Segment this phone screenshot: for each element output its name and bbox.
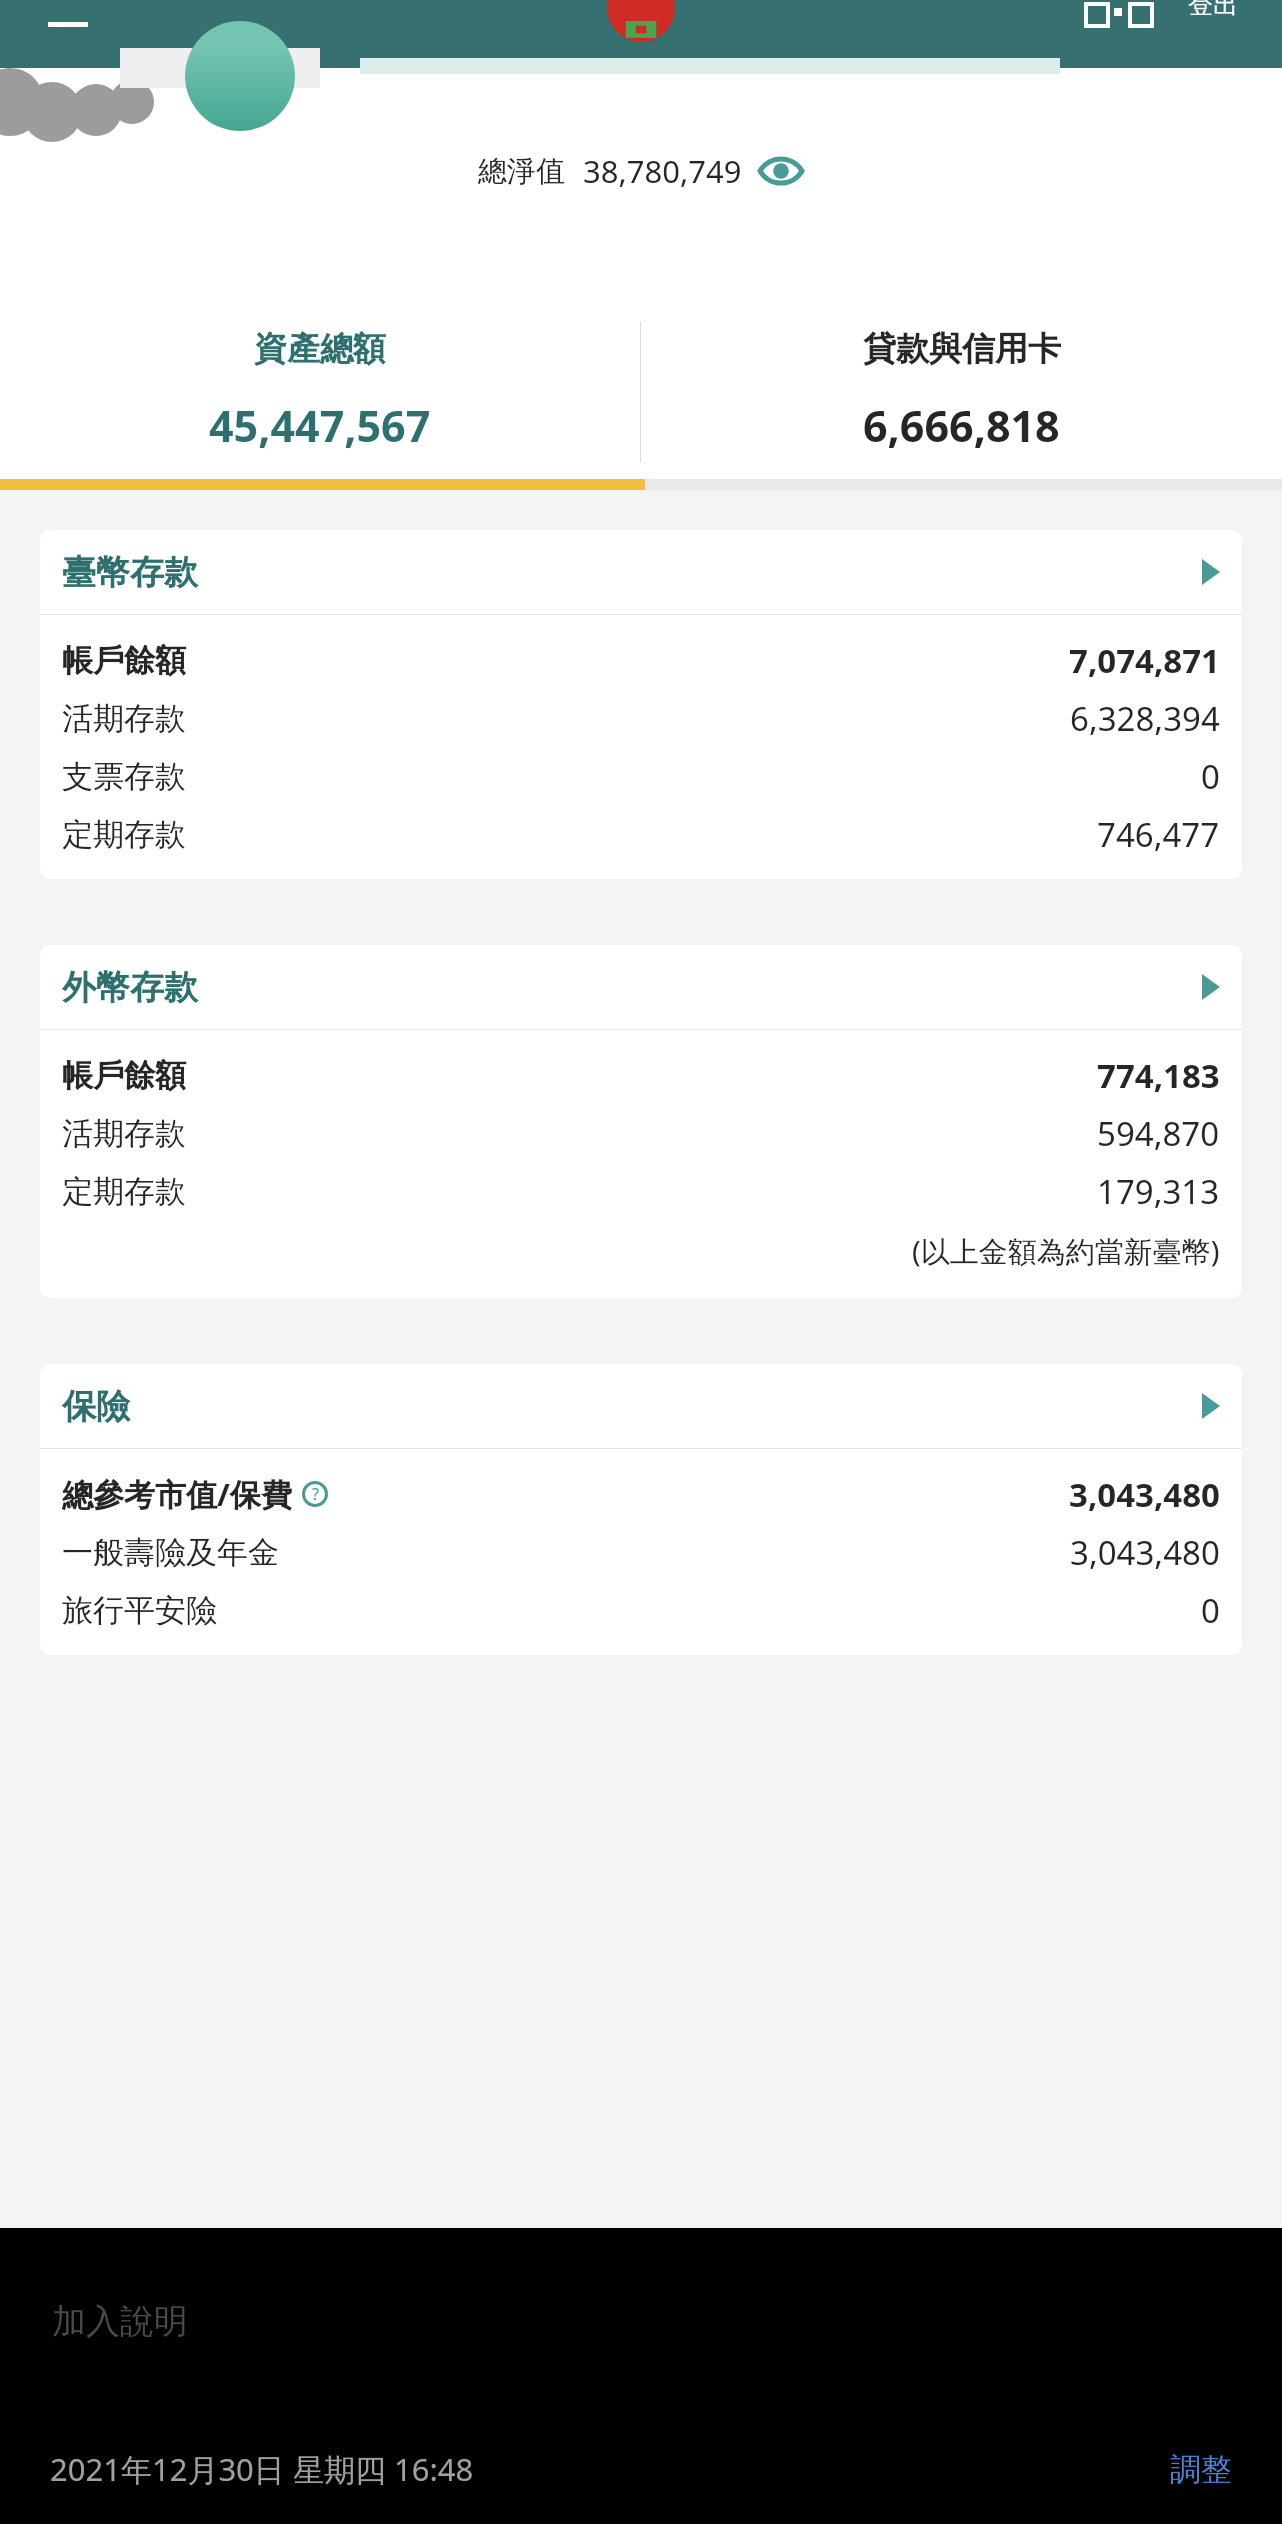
- button[interactable]: 一般壽險及年金: [40, 1523, 1242, 1581]
- staticText: 3,043,480: [1069, 1472, 1220, 1517]
- staticText: 旅行平安險: [62, 1591, 217, 1630]
- button[interactable]: 定期存款: [40, 805, 1242, 863]
- staticText: 6,666,818: [863, 396, 1060, 455]
- staticText: (以上金額為約當新臺幣): [912, 1231, 1220, 1271]
- staticText: 臺幣存款: [62, 551, 198, 594]
- staticText: 保險: [62, 1385, 130, 1428]
- button[interactable]: 支票存款: [40, 747, 1242, 805]
- staticText: 594,870: [1097, 1111, 1220, 1156]
- staticText: 登出: [1188, 0, 1238, 20]
- staticText: 加入說明: [52, 2300, 188, 2343]
- button[interactable]: 外幣存款: [40, 945, 1242, 1029]
- staticText: 總淨值: [478, 153, 565, 190]
- button[interactable]: 總參考市值/保費: [40, 1465, 1242, 1523]
- staticText: 45,447,567: [209, 396, 431, 455]
- button[interactable]: 資產總額: [0, 304, 640, 479]
- staticText: 774,183: [1097, 1053, 1220, 1098]
- button[interactable]: 調整: [1170, 2450, 1232, 2489]
- staticText: 總參考市值/保費: [62, 1473, 292, 1515]
- staticText: 活期存款: [62, 699, 186, 738]
- staticText: 資產總額: [254, 328, 386, 370]
- button[interactable]: 旅行平安險: [40, 1581, 1242, 1639]
- button[interactable]: Toggle balance visibility: [758, 148, 804, 194]
- button[interactable]: 帳戶餘額: [40, 631, 1242, 689]
- button[interactable]: 加入說明: [52, 2300, 188, 2343]
- staticText: 一般壽險及年金: [62, 1533, 279, 1572]
- staticText: 帳戶餘額: [62, 1056, 186, 1095]
- button[interactable]: 活期存款: [40, 689, 1242, 747]
- button[interactable]: 貸款與信用卡: [641, 304, 1282, 479]
- staticText: 定期存款: [62, 815, 186, 854]
- staticText: 3,043,480: [1070, 1530, 1220, 1575]
- button[interactable]: 保險: [40, 1364, 1242, 1448]
- button[interactable]: 定期存款: [40, 1162, 1242, 1220]
- button[interactable]: Help: [302, 1481, 328, 1507]
- staticText: 外幣存款: [62, 966, 198, 1009]
- staticText: 定期存款: [62, 1172, 186, 1211]
- staticText: 貸款與信用卡: [863, 328, 1061, 370]
- button[interactable]: Menu: [40, 0, 96, 30]
- staticText: 746,477: [1097, 812, 1220, 857]
- staticText: 支票存款: [62, 757, 186, 796]
- staticText: 帳戶餘額: [62, 641, 186, 680]
- staticText: 2021年12月30日 星期四 16:48: [50, 2448, 474, 2490]
- staticText: 0: [1201, 754, 1220, 799]
- button[interactable]: 登出: [1168, 0, 1258, 20]
- button[interactable]: 活期存款: [40, 1104, 1242, 1162]
- staticText: 調整: [1170, 2450, 1232, 2489]
- staticText: 179,313: [1097, 1169, 1220, 1214]
- staticText: 活期存款: [62, 1114, 186, 1153]
- button[interactable]: QR code: [1082, 0, 1138, 20]
- button[interactable]: 帳戶餘額: [40, 1046, 1242, 1104]
- button[interactable]: 臺幣存款: [40, 530, 1242, 614]
- staticText: 7,074,871: [1069, 638, 1220, 683]
- staticText: 38,780,749: [583, 150, 742, 192]
- staticText: 0: [1201, 1588, 1220, 1633]
- staticText: ?: [312, 1483, 319, 1505]
- staticText: 6,328,394: [1070, 696, 1220, 741]
